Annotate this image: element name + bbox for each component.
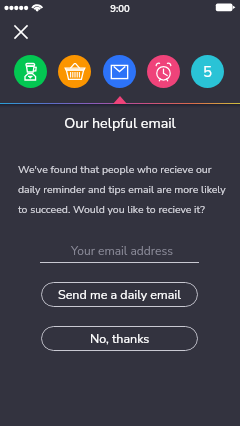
- button[interactable]: Send me a daily email: [41, 282, 198, 307]
- button[interactable]: Email: [103, 55, 136, 88]
- staticText: 9:00: [0, 2, 240, 15]
- button[interactable]: Close: [7, 18, 34, 45]
- button[interactable]: Blender: [14, 55, 47, 88]
- button[interactable]: Basket: [58, 55, 91, 88]
- staticText: We've found that people who recieve our …: [18, 162, 230, 217]
- staticText: Our helpful email: [0, 114, 240, 134]
- staticText: No, thanks: [90, 330, 150, 347]
- staticText: Send me a daily email: [58, 286, 181, 303]
- button[interactable]: Reminder: [147, 55, 180, 88]
- button[interactable]: No, thanks: [41, 326, 198, 351]
- staticText: Your email address: [2, 243, 240, 259]
- staticText: 5: [203, 62, 213, 82]
- button[interactable]: Day 5: [191, 55, 224, 88]
